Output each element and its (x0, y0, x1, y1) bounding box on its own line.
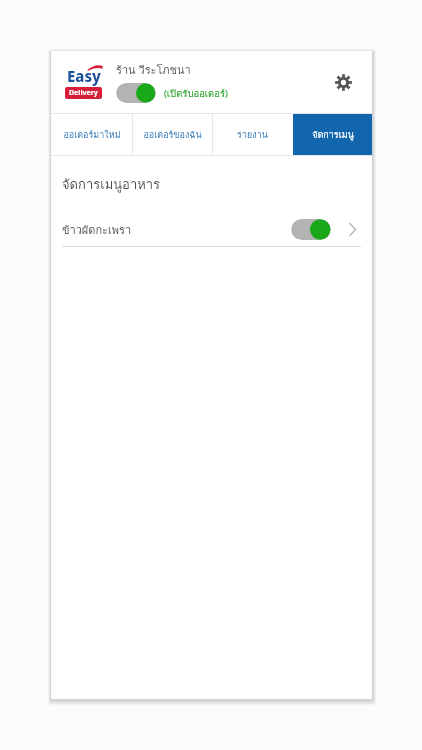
button[interactable]: รายงาน (213, 114, 292, 155)
button[interactable]: Open menu item (343, 220, 361, 238)
staticText: (เปิดรับออเดอร์) (164, 86, 228, 101)
button[interactable]: Easy Delivery (60, 62, 106, 102)
staticText: ข้าวผัดกะเพรา (62, 221, 291, 238)
staticText: จัดการเมนูอาหาร (62, 174, 161, 195)
button[interactable]: ออเดอร์ของฉัน (133, 114, 212, 155)
staticText: Easy (67, 66, 101, 86)
button[interactable]: Toggle menu item availability (291, 219, 331, 240)
button[interactable]: Settings (326, 65, 360, 99)
button[interactable]: ข้าวผัดกะเพรา (51, 212, 372, 246)
staticText: ร้าน วีระโภชนา (116, 61, 191, 78)
staticText: ออเดอร์มาใหม่ (63, 128, 121, 142)
button[interactable]: Toggle accepting orders (116, 83, 156, 103)
staticText: ออเดอร์ของฉัน (143, 128, 202, 142)
button[interactable]: ออเดอร์มาใหม่ (51, 114, 132, 155)
staticText: Delivery (69, 88, 98, 98)
staticText: จัดการเมนู (312, 128, 354, 142)
staticText: รายงาน (237, 128, 268, 142)
button[interactable]: จัดการเมนู (293, 114, 372, 155)
